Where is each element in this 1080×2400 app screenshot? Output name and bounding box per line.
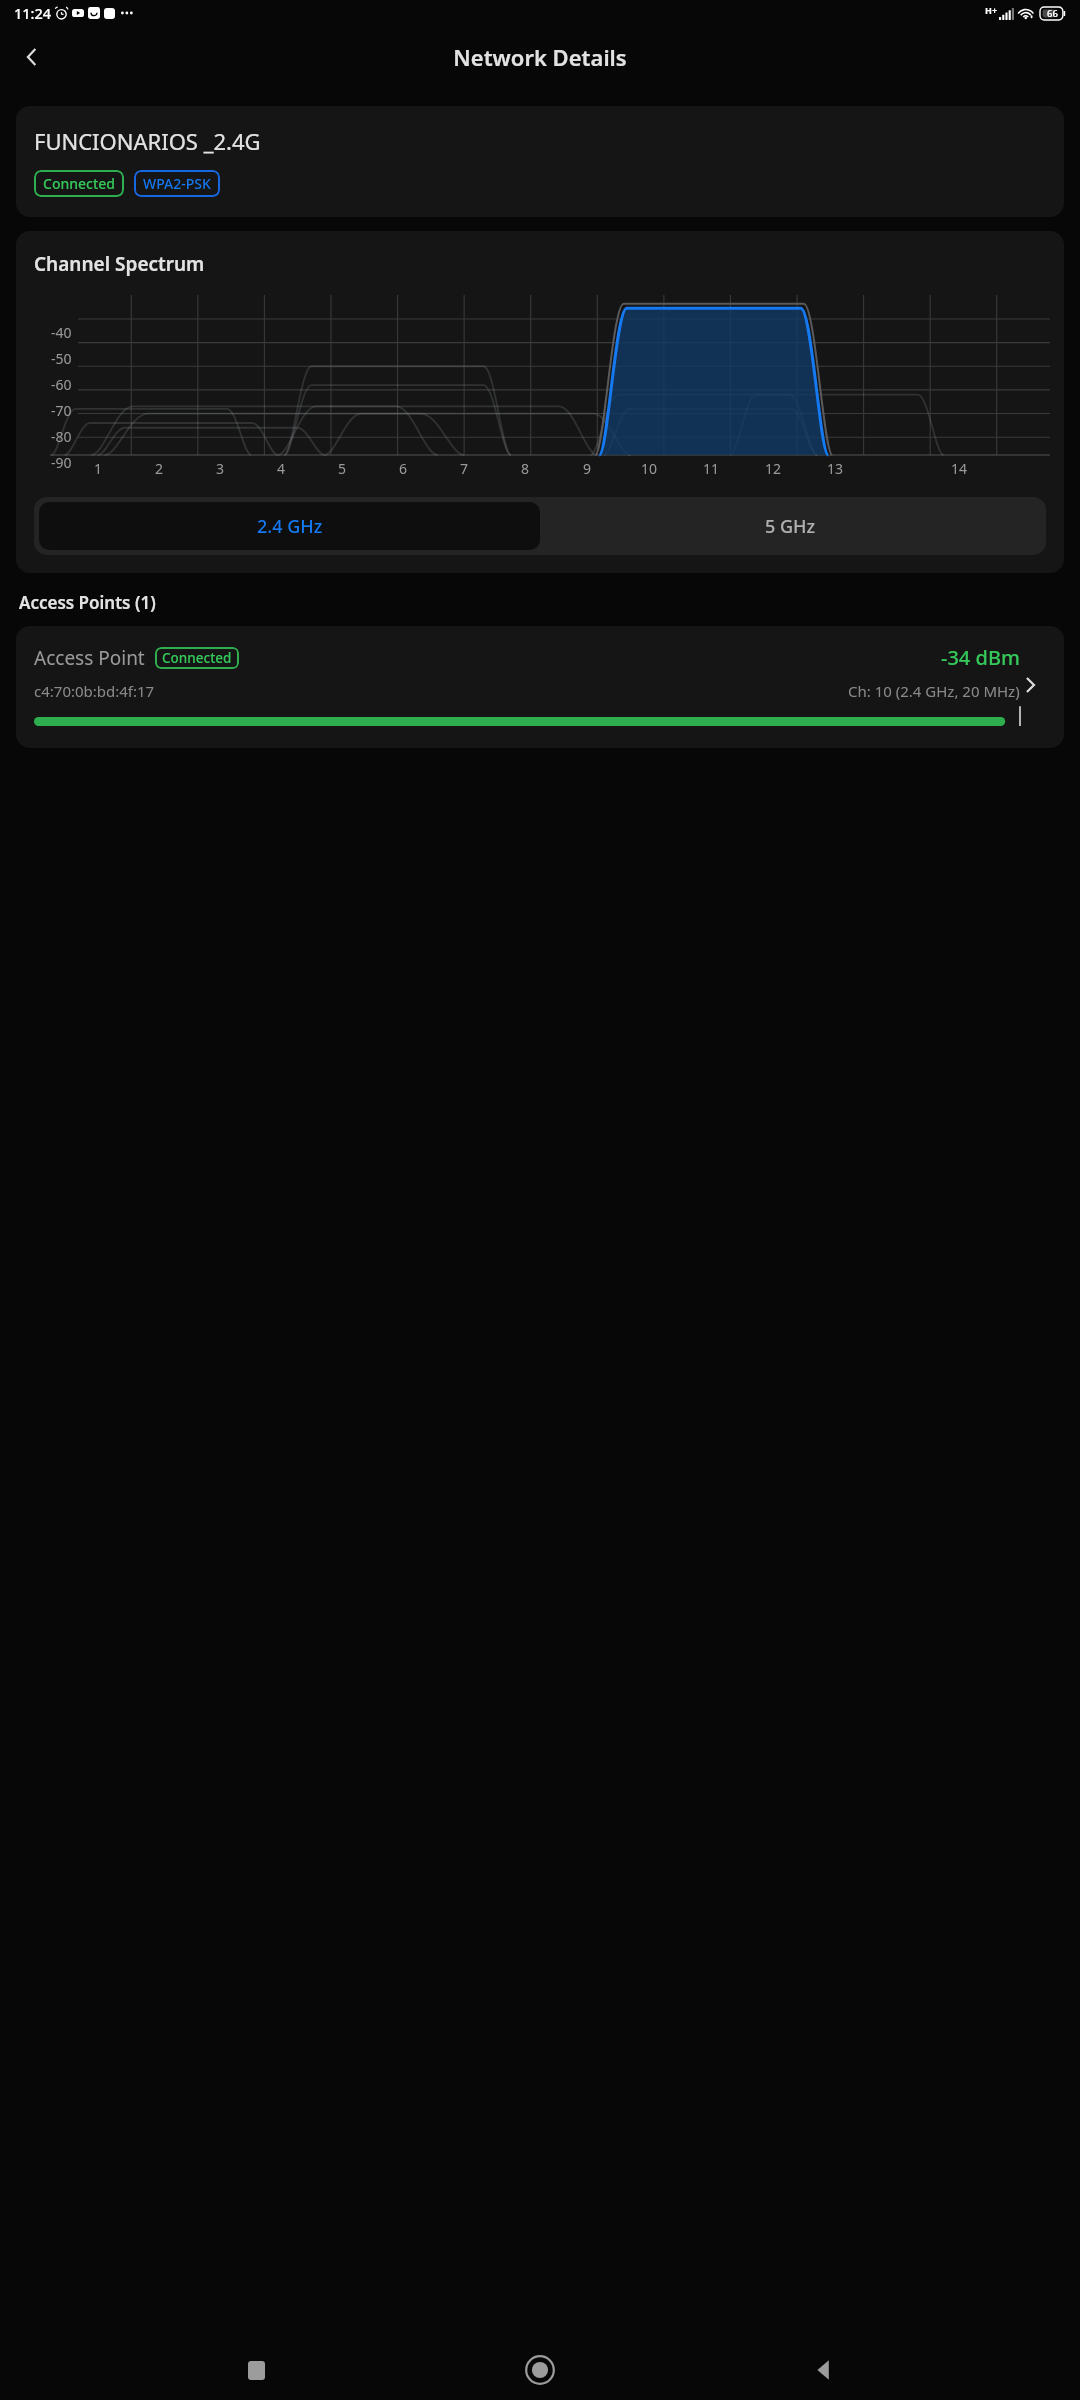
staticText: -70: [51, 401, 72, 420]
staticText: 3: [216, 459, 225, 478]
staticText: -80: [51, 427, 72, 446]
button[interactable]: FUNCIONARIOS _2.4G: [16, 106, 1064, 217]
button[interactable]: Access Point: [16, 626, 1064, 748]
staticText: 11:24: [14, 3, 52, 23]
staticText: Access Point: [34, 645, 145, 671]
staticText: 10: [641, 459, 658, 478]
staticText: 12: [765, 459, 782, 478]
staticText: 6: [399, 459, 408, 478]
staticText: 66: [1047, 7, 1058, 20]
staticText: 9: [583, 459, 592, 478]
staticText: Connected: [162, 649, 232, 667]
staticText: -34 dBm: [941, 644, 1020, 671]
button[interactable]: WPA2-PSK: [134, 170, 220, 197]
button[interactable]: Back: [8, 33, 56, 81]
button[interactable]: 2.4 GHz: [39, 502, 540, 550]
staticText: -50: [51, 349, 72, 368]
staticText: FUNCIONARIOS _2.4G: [34, 126, 261, 156]
staticText: 7: [460, 459, 469, 478]
button[interactable]: Back: [796, 2342, 852, 2398]
staticText: 1: [94, 459, 103, 478]
staticText: Access Points (1): [19, 591, 156, 614]
staticText: 2.4 GHz: [257, 514, 323, 539]
staticText: Connected: [43, 174, 115, 193]
staticText: -90: [51, 453, 72, 472]
staticText: Network Details: [453, 42, 627, 72]
staticText: 8: [521, 459, 530, 478]
staticText: H+: [985, 4, 998, 16]
staticText: 14: [951, 459, 968, 478]
staticText: 2: [155, 459, 164, 478]
staticText: WPA2-PSK: [143, 174, 211, 193]
button[interactable]: Home: [512, 2342, 568, 2398]
staticText: -40: [51, 323, 72, 342]
staticText: Ch: 10 (2.4 GHz, 20 MHz): [848, 681, 1020, 701]
staticText: 5 GHz: [765, 514, 816, 539]
staticText: 13: [827, 459, 844, 478]
button[interactable]: 5 GHz: [540, 502, 1041, 550]
button[interactable]: Open access point details: [1010, 665, 1050, 705]
button[interactable]: Recent apps: [228, 2342, 284, 2398]
staticText: Channel Spectrum: [34, 251, 205, 277]
staticText: c4:70:0b:bd:4f:17: [34, 681, 155, 701]
button[interactable]: Connected: [34, 170, 124, 197]
staticText: 11: [703, 459, 720, 478]
staticText: 5: [338, 459, 347, 478]
staticText: -60: [51, 375, 72, 394]
staticText: 4: [277, 459, 286, 478]
